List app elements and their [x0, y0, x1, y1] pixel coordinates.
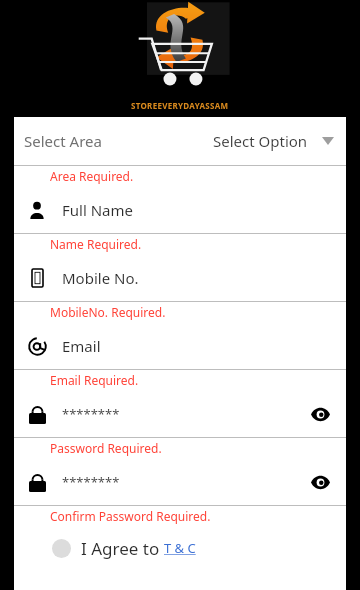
staticText: MobileNo. Required.	[50, 304, 166, 320]
staticText: Select Option	[213, 131, 308, 151]
staticText: Password Required.	[50, 440, 162, 456]
button[interactable]: I Agree to	[14, 526, 346, 570]
staticText: Full Name	[62, 200, 133, 220]
button[interactable]: Full Name	[14, 186, 346, 233]
staticText: ********	[62, 473, 120, 491]
staticText: Email	[62, 336, 101, 356]
button[interactable]: Show password	[308, 470, 332, 494]
staticText: Name Required.	[50, 236, 142, 252]
staticText: Confirm Password Required.	[50, 508, 211, 524]
button[interactable]: ********	[14, 458, 346, 505]
staticText: Area Required.	[50, 168, 134, 184]
staticText: Select Area	[24, 131, 102, 151]
button[interactable]: ********	[14, 390, 346, 437]
button[interactable]: Show password	[308, 402, 332, 426]
staticText: STOREEVERYDAYASSAM	[131, 100, 229, 111]
button[interactable]: Select Area	[14, 117, 346, 165]
button[interactable]: T & C	[164, 539, 196, 557]
staticText: T & C	[164, 539, 196, 557]
button[interactable]: Email	[14, 322, 346, 369]
staticText: ********	[62, 405, 120, 423]
staticText: Email Required.	[50, 372, 139, 388]
staticText: I Agree to	[81, 537, 164, 560]
staticText: Mobile No.	[62, 268, 139, 288]
button[interactable]: Mobile No.	[14, 254, 346, 301]
